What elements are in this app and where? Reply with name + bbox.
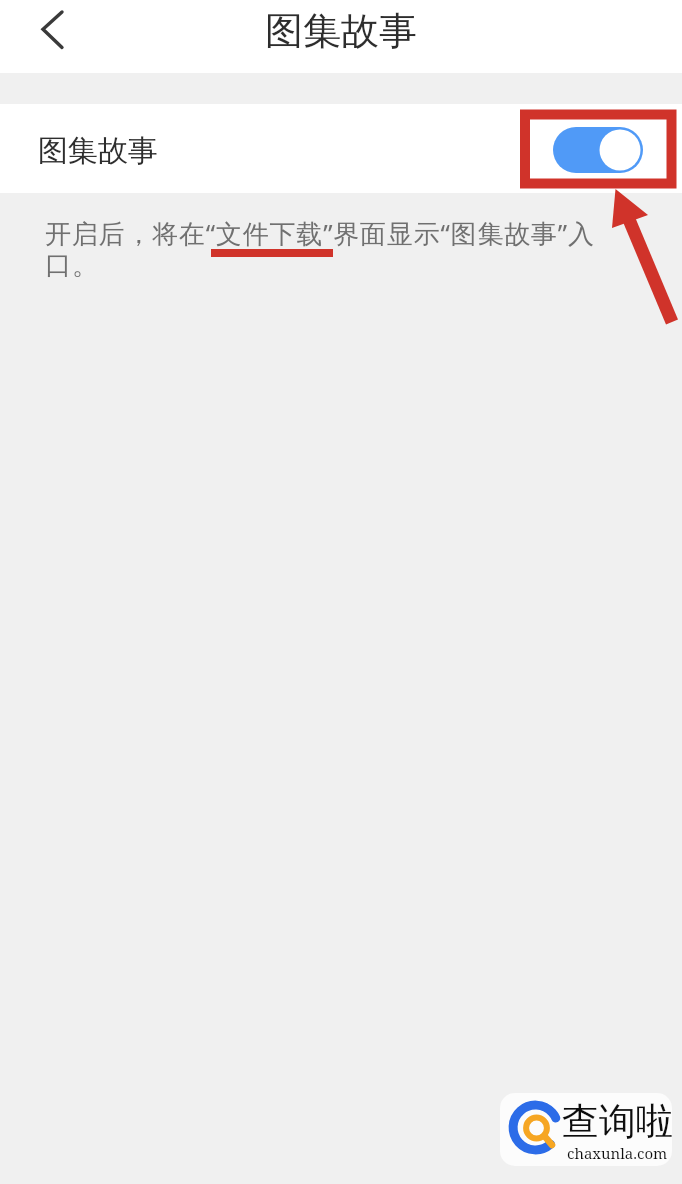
- button[interactable]: Toggle 图集故事: [553, 127, 643, 173]
- button[interactable]: Back: [19, 5, 86, 69]
- staticText: chaxunla.com: [567, 1143, 668, 1163]
- staticText: 开启后，将在“文件下载”界面显示“图集故事”入口。: [45, 215, 615, 282]
- staticText: 图集故事: [265, 7, 417, 55]
- staticText: 图集故事: [38, 132, 158, 170]
- staticText: 查询啦: [562, 1098, 672, 1145]
- button[interactable]: 图集故事: [0, 104, 682, 193]
